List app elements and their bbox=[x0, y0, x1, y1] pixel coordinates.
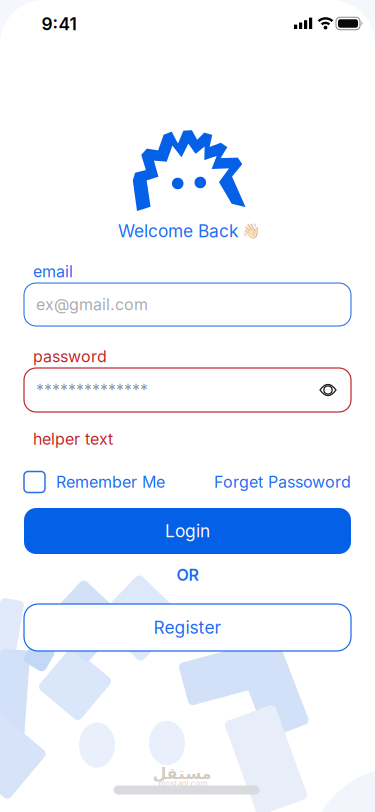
staticText: Login bbox=[165, 521, 210, 541]
staticText: 👋🏻 bbox=[242, 223, 260, 239]
staticText: 9:41 bbox=[41, 14, 76, 34]
staticText: Register bbox=[153, 617, 221, 638]
button[interactable]: Remember Me bbox=[24, 471, 165, 492]
staticText: مستقل bbox=[152, 764, 211, 783]
staticText: mostaql.com bbox=[158, 779, 207, 788]
button[interactable]: email bbox=[24, 283, 351, 326]
button[interactable]: Forget Passoword bbox=[214, 473, 351, 491]
staticText: email bbox=[33, 262, 73, 281]
staticText: password bbox=[33, 347, 107, 366]
button[interactable]: Show password bbox=[319, 383, 337, 396]
button[interactable]: Login bbox=[24, 508, 351, 554]
staticText: helper text bbox=[33, 430, 113, 448]
button[interactable]: password bbox=[24, 368, 351, 412]
staticText: OR bbox=[176, 566, 198, 584]
staticText: Remember Me bbox=[56, 473, 165, 491]
staticText: ************** bbox=[36, 381, 148, 399]
staticText: ex@gmail.com bbox=[36, 295, 148, 314]
staticText: Welcome Back bbox=[118, 221, 239, 241]
button[interactable]: Register bbox=[24, 604, 351, 651]
staticText: Forget Passoword bbox=[214, 473, 351, 491]
